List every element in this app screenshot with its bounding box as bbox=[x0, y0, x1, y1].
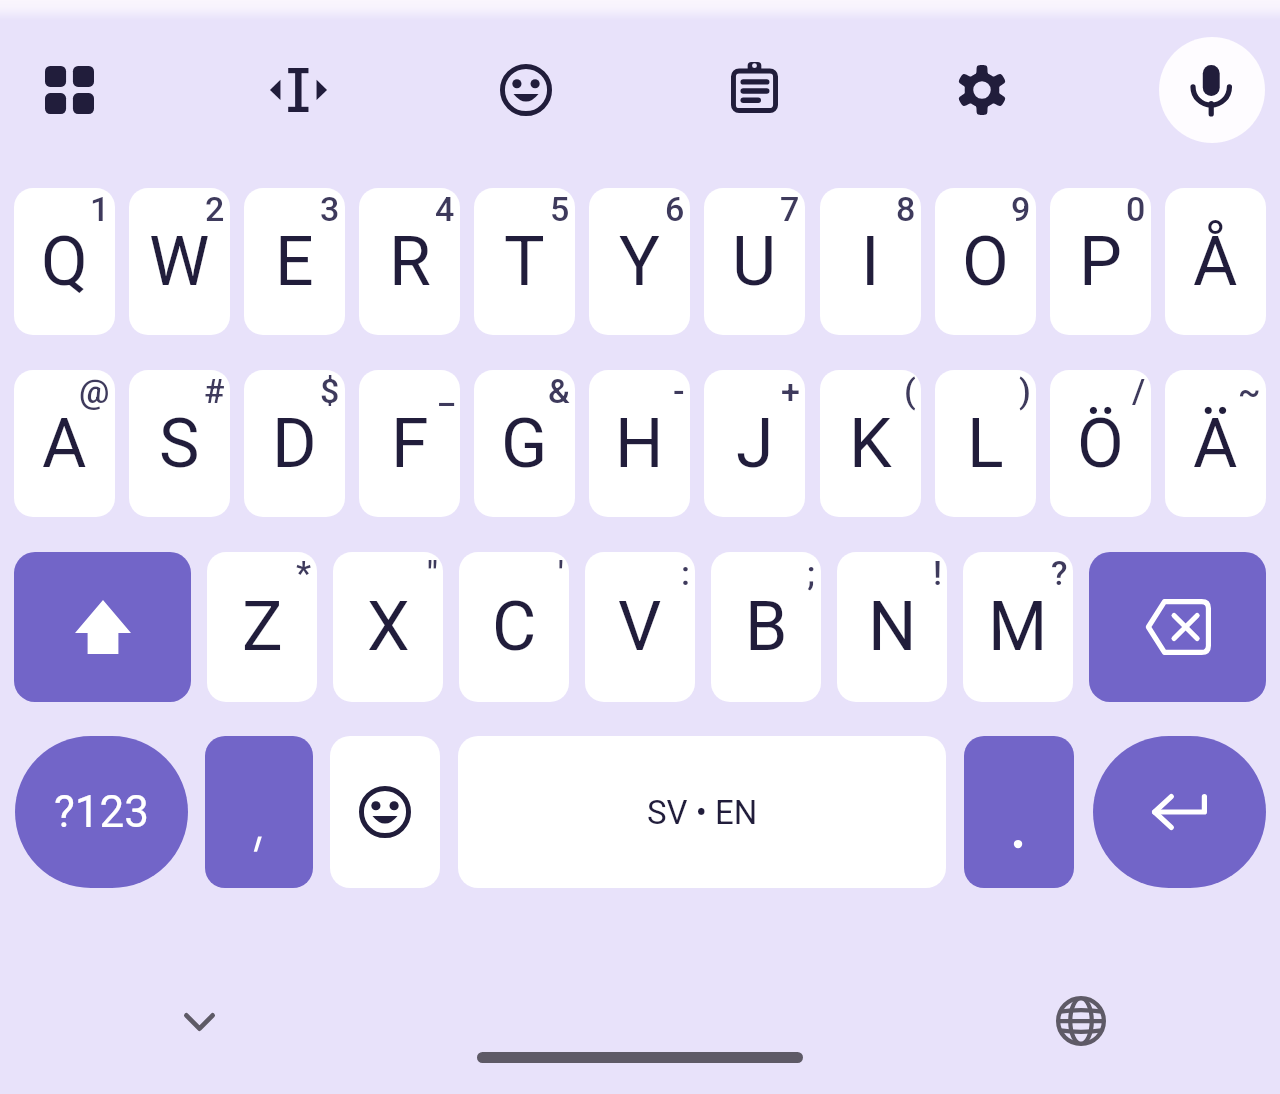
staticText: ~ bbox=[1238, 371, 1261, 411]
staticText: B bbox=[745, 587, 788, 667]
staticText: 4 bbox=[435, 189, 455, 229]
staticText: 2 bbox=[205, 189, 225, 229]
staticText: N bbox=[868, 587, 917, 667]
staticText: 1 bbox=[90, 189, 110, 229]
staticText: 0 bbox=[1126, 189, 1146, 229]
button[interactable]: 8 bbox=[820, 188, 921, 335]
button[interactable]: Shift bbox=[14, 552, 191, 702]
staticText: 9 bbox=[1011, 189, 1031, 229]
staticText: X bbox=[367, 587, 410, 667]
staticText: J bbox=[736, 404, 774, 484]
staticText: V bbox=[618, 587, 662, 667]
button[interactable]: Move cursor bbox=[250, 42, 346, 138]
staticText: 8 bbox=[896, 189, 916, 229]
staticText: W bbox=[149, 222, 210, 302]
staticText: 7 bbox=[780, 189, 800, 229]
staticText: U bbox=[732, 222, 777, 302]
staticText: F bbox=[391, 404, 429, 484]
staticText: A bbox=[42, 404, 87, 484]
staticText: + bbox=[781, 371, 800, 411]
staticText: Y bbox=[619, 222, 660, 302]
button[interactable]: Hide keyboard bbox=[159, 982, 239, 1062]
button[interactable]: SV • EN bbox=[458, 736, 946, 888]
button[interactable]: ' bbox=[459, 552, 569, 702]
button[interactable]: Settings bbox=[934, 42, 1030, 138]
button[interactable]: Emoji bbox=[478, 42, 574, 138]
staticText: ( bbox=[904, 371, 916, 411]
button[interactable]: 1 bbox=[14, 188, 115, 335]
button[interactable]: 4 bbox=[359, 188, 460, 335]
staticText: C bbox=[492, 587, 537, 667]
staticText: Ä bbox=[1193, 404, 1238, 484]
staticText: _ bbox=[439, 371, 455, 411]
staticText: S bbox=[159, 404, 200, 484]
button[interactable]: * bbox=[207, 552, 317, 702]
button[interactable]: ? bbox=[963, 552, 1073, 702]
staticText: " bbox=[427, 553, 438, 593]
button[interactable]: Comma bbox=[205, 736, 313, 888]
button[interactable]: Switch layout bbox=[21, 42, 117, 138]
staticText: Z bbox=[242, 587, 283, 667]
staticText: H bbox=[615, 404, 664, 484]
staticText: Å bbox=[1193, 222, 1238, 302]
button[interactable]: # bbox=[129, 370, 230, 517]
button[interactable]: 0 bbox=[1050, 188, 1151, 335]
staticText: Ö bbox=[1077, 404, 1124, 484]
button[interactable]: 7 bbox=[704, 188, 805, 335]
staticText: K bbox=[849, 404, 892, 484]
button[interactable]: 9 bbox=[935, 188, 1036, 335]
button[interactable]: 3 bbox=[244, 188, 345, 335]
button[interactable]: Å bbox=[1165, 188, 1266, 335]
button[interactable]: 6 bbox=[589, 188, 690, 335]
staticText: P bbox=[1079, 222, 1122, 302]
staticText: 3 bbox=[320, 189, 340, 229]
staticText: ) bbox=[1019, 371, 1031, 411]
staticText: $ bbox=[320, 371, 340, 411]
staticText: ?123 bbox=[54, 786, 149, 838]
staticText: # bbox=[204, 371, 225, 411]
button[interactable]: ?123 bbox=[15, 736, 188, 888]
button[interactable]: Enter bbox=[1093, 736, 1266, 888]
button[interactable]: / bbox=[1050, 370, 1151, 517]
staticText: T bbox=[504, 222, 545, 302]
button[interactable]: " bbox=[333, 552, 443, 702]
button[interactable]: 2 bbox=[129, 188, 230, 335]
button[interactable]: ~ bbox=[1165, 370, 1266, 517]
button[interactable]: 5 bbox=[474, 188, 575, 335]
staticText: M bbox=[988, 587, 1048, 667]
staticText: R bbox=[389, 222, 431, 302]
staticText: O bbox=[962, 222, 1009, 302]
button[interactable]: & bbox=[474, 370, 575, 517]
button[interactable]: Emoji keyboard bbox=[330, 736, 440, 888]
button[interactable]: ( bbox=[820, 370, 921, 517]
staticText: ' bbox=[558, 553, 564, 593]
button[interactable]: Clipboard bbox=[706, 39, 802, 135]
staticText: ; bbox=[807, 553, 816, 593]
button[interactable]: $ bbox=[244, 370, 345, 517]
staticText: G bbox=[501, 404, 548, 484]
button[interactable]: - bbox=[589, 370, 690, 517]
button[interactable]: Period bbox=[964, 736, 1074, 888]
staticText: / bbox=[1132, 371, 1146, 411]
staticText: SV • EN bbox=[647, 793, 758, 832]
button[interactable]: : bbox=[585, 552, 695, 702]
staticText: ? bbox=[1051, 553, 1068, 593]
staticText: - bbox=[673, 371, 685, 411]
staticText: @ bbox=[79, 371, 110, 411]
button[interactable]: + bbox=[704, 370, 805, 517]
staticText: Q bbox=[41, 222, 88, 302]
button[interactable]: @ bbox=[14, 370, 115, 517]
button[interactable]: ; bbox=[711, 552, 821, 702]
staticText: E bbox=[275, 222, 314, 302]
staticText: * bbox=[296, 553, 312, 593]
button[interactable]: Change language bbox=[1041, 981, 1121, 1061]
staticText: ! bbox=[933, 553, 942, 593]
staticText: : bbox=[681, 553, 690, 593]
button[interactable]: ! bbox=[837, 552, 947, 702]
button[interactable]: Backspace bbox=[1089, 552, 1266, 702]
button[interactable]: Voice input bbox=[1159, 37, 1265, 143]
button[interactable]: _ bbox=[359, 370, 460, 517]
staticText: & bbox=[548, 371, 570, 411]
staticText: 5 bbox=[550, 189, 570, 229]
button[interactable]: ) bbox=[935, 370, 1036, 517]
